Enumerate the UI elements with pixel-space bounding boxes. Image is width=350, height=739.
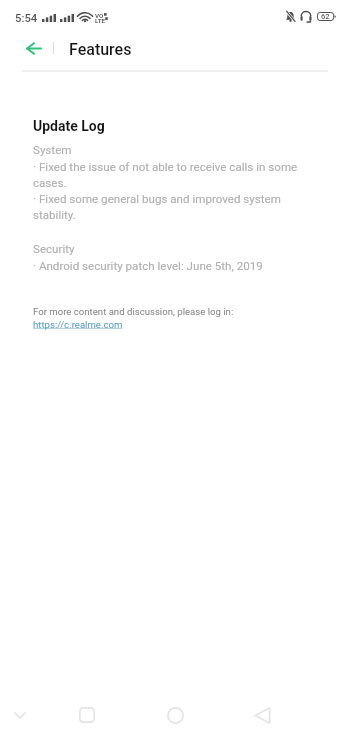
staticText: Features [69, 40, 132, 59]
staticText: · Android security patch level: June 5th… [33, 259, 263, 273]
button[interactable]: Back [20, 34, 48, 62]
staticText: Update Log [33, 118, 105, 134]
staticText: 62 [321, 12, 330, 21]
button[interactable]: Hide keyboard [4, 699, 36, 731]
staticText: System [33, 143, 72, 157]
button[interactable]: Recent apps [71, 699, 103, 731]
staticText: · Fixed the issue of not able to receive… [33, 160, 301, 221]
button[interactable]: Back [246, 699, 278, 731]
staticText: LTE [95, 17, 106, 24]
staticText: For more content and discussion, please … [33, 306, 234, 317]
staticText: 5:54 [15, 12, 38, 25]
button[interactable]: https://c.realme.com [33, 319, 123, 330]
staticText: Security [33, 242, 75, 256]
staticText: VO [95, 12, 104, 19]
button[interactable]: Home [159, 699, 191, 731]
